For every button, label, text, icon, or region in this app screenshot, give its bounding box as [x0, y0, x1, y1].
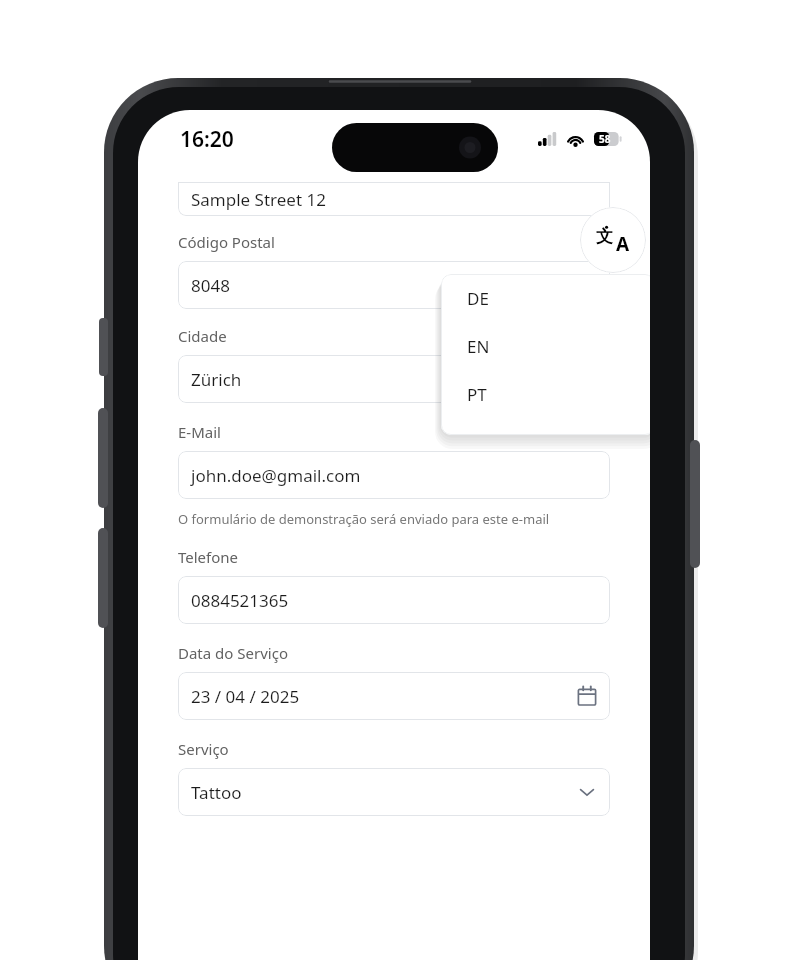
other: Pick date: [577, 686, 597, 706]
staticText: john.doe@gmail.com: [191, 464, 597, 487]
staticText: Telefone: [178, 547, 239, 567]
staticText: DE: [467, 287, 489, 310]
button[interactable]: Sample Street 12: [178, 182, 610, 216]
button[interactable]: Tattoo: [178, 768, 610, 816]
staticText: 文: [596, 226, 613, 247]
button[interactable]: DE: [441, 274, 650, 322]
staticText: 23 / 04 / 2025: [191, 685, 577, 708]
staticText: Código Postal: [178, 232, 275, 252]
staticText: 0884521365: [191, 589, 597, 612]
staticText: Tattoo: [191, 781, 577, 804]
button[interactable]: EN: [441, 322, 650, 370]
button[interactable]: PT: [441, 370, 650, 418]
button[interactable]: john.doe@gmail.com: [178, 451, 610, 499]
staticText: Data do Serviço: [178, 643, 288, 663]
button[interactable]: 8048: [178, 261, 610, 309]
button[interactable]: Translate: [580, 207, 646, 273]
staticText: PT: [467, 383, 487, 406]
staticText: EN: [467, 335, 490, 358]
staticText: Sample Street 12: [191, 188, 597, 211]
staticText: E-Mail: [178, 422, 221, 442]
other: Open service list: [577, 782, 597, 802]
staticText: Zürich: [191, 368, 597, 391]
button[interactable]: 0884521365: [178, 576, 610, 624]
staticText: O formulário de demonstração será enviad…: [178, 510, 550, 528]
staticText: Cidade: [178, 326, 227, 346]
staticText: Serviço: [178, 739, 229, 759]
button[interactable]: 23 / 04 / 2025: [178, 672, 610, 720]
staticText: A: [616, 231, 630, 257]
staticText: 8048: [191, 274, 597, 297]
button[interactable]: Zürich: [178, 355, 610, 403]
staticText: 16:20: [180, 125, 234, 154]
staticText: 58: [599, 132, 611, 146]
